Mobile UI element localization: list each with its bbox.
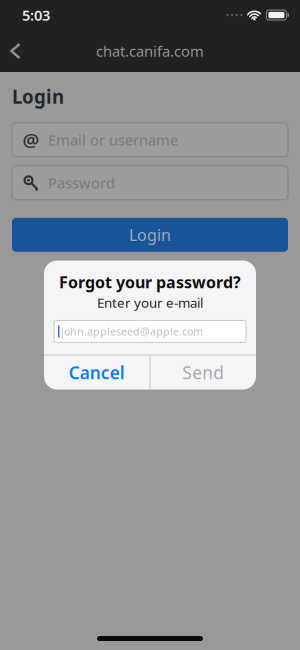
button[interactable]: Send <box>150 355 256 389</box>
button[interactable]: Login <box>12 218 288 252</box>
staticText: Login <box>12 84 64 109</box>
staticText: Cancel <box>69 361 125 384</box>
button[interactable]: Cancel <box>44 355 149 389</box>
button[interactable]: john.appleseed@apple.com <box>54 320 246 342</box>
staticText: @ <box>22 127 39 152</box>
staticText: 5:03 <box>22 5 50 25</box>
button[interactable]: Password <box>12 166 288 200</box>
staticText: Forgot your password? <box>59 271 241 293</box>
staticText: Send <box>182 361 224 384</box>
staticText: Login <box>129 224 171 245</box>
staticText: Password <box>48 173 115 193</box>
button[interactable]: Back <box>0 30 22 71</box>
staticText: john.appleseed@apple.com <box>61 324 203 339</box>
staticText: Email or username <box>48 130 178 150</box>
button[interactable]: @ <box>12 123 288 157</box>
staticText: Enter your e-mail <box>97 294 203 311</box>
staticText: chat.canifa.com <box>96 41 204 61</box>
